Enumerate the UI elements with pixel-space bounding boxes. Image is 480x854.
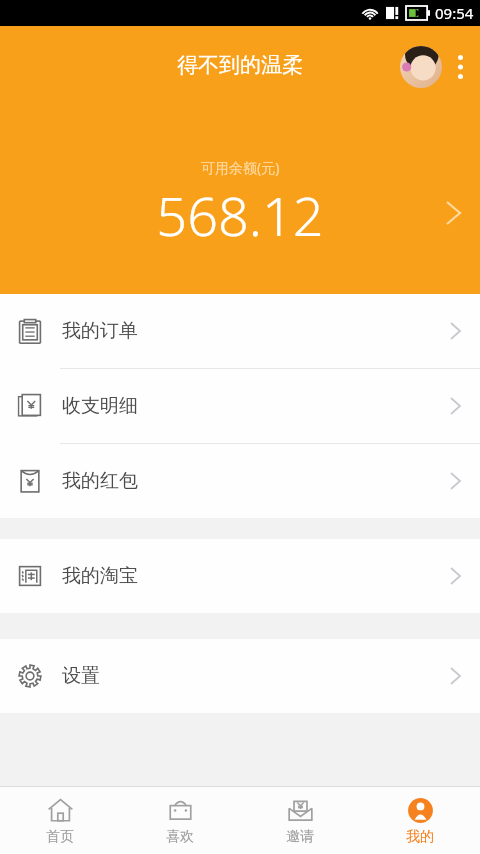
button[interactable]: 我的订单	[0, 294, 480, 368]
staticText: 喜欢	[166, 828, 194, 846]
staticText: 09:54	[435, 3, 474, 23]
staticText: 邀请	[286, 828, 314, 846]
staticText: 我的淘宝	[62, 564, 138, 588]
staticText: 568.12	[156, 178, 324, 252]
button[interactable]: 收支明细	[0, 369, 480, 443]
button[interactable]: Profile avatar	[400, 46, 442, 88]
button[interactable]: More options	[448, 46, 472, 88]
staticText: 我的订单	[62, 319, 138, 343]
button[interactable]: 喜欢	[120, 787, 240, 854]
button[interactable]: 设置	[0, 639, 480, 713]
button[interactable]: 我的淘宝	[0, 539, 480, 613]
button[interactable]: 我的红包	[0, 444, 480, 518]
button[interactable]: 首页	[0, 787, 120, 854]
staticText: 我的红包	[62, 469, 138, 493]
staticText: 得不到的温柔	[177, 52, 303, 78]
button[interactable]: 邀请	[240, 787, 360, 854]
staticText: 可用余额(元)	[201, 158, 280, 177]
staticText: 设置	[62, 664, 100, 688]
button[interactable]: 我的	[360, 787, 480, 854]
staticText: 首页	[46, 828, 74, 846]
button[interactable]: 可用余额(元)	[0, 158, 480, 268]
staticText: 我的	[406, 828, 434, 846]
staticText: 收支明细	[62, 394, 138, 418]
